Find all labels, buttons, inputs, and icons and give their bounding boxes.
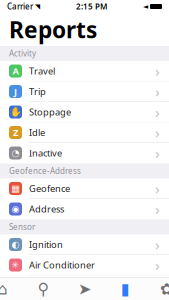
staticText: ✳ bbox=[11, 260, 19, 270]
staticText: › bbox=[155, 102, 160, 122]
button[interactable]: ✳ bbox=[0, 255, 169, 275]
button[interactable]: ◐ bbox=[0, 234, 169, 255]
button[interactable]: Places bbox=[27, 278, 60, 300]
staticText: Air Conditioner bbox=[29, 259, 95, 271]
staticText: Address bbox=[29, 203, 64, 215]
staticText: › bbox=[155, 143, 160, 163]
staticText: › bbox=[155, 235, 160, 254]
staticText: Ignition bbox=[29, 238, 63, 251]
staticText: Geofence bbox=[29, 182, 70, 195]
staticText: ◥ bbox=[35, 3, 40, 10]
staticText: Travel bbox=[29, 65, 55, 77]
staticText: › bbox=[155, 179, 160, 198]
staticText: J bbox=[14, 85, 17, 98]
button[interactable]: ✋ bbox=[0, 102, 169, 122]
button[interactable]: Home bbox=[0, 278, 19, 300]
staticText: A bbox=[12, 65, 18, 77]
staticText: ➤ bbox=[78, 280, 91, 298]
staticText: ▦ bbox=[11, 183, 20, 194]
staticText: Idle bbox=[29, 126, 45, 139]
staticText: Geofence-Address bbox=[9, 166, 81, 176]
staticText: Carrier bbox=[7, 1, 33, 12]
staticText: Stoppage bbox=[29, 106, 71, 118]
staticText: ⚲ bbox=[37, 280, 49, 298]
button[interactable]: J bbox=[0, 81, 169, 102]
button[interactable]: Reports bbox=[109, 278, 142, 300]
staticText: › bbox=[155, 199, 160, 219]
staticText: Analog Data bbox=[29, 279, 82, 292]
staticText: › bbox=[155, 255, 160, 275]
staticText: › bbox=[155, 276, 160, 295]
staticText: ✋ bbox=[9, 107, 21, 117]
button[interactable]: A bbox=[0, 61, 169, 81]
staticText: 2:15 PM bbox=[76, 1, 107, 12]
button[interactable]: Track bbox=[68, 278, 101, 300]
staticText: › bbox=[155, 123, 160, 142]
staticText: ◄ bbox=[143, 3, 148, 10]
staticText: Sensor bbox=[9, 222, 35, 232]
staticText: ▮ bbox=[121, 280, 130, 298]
staticText: ◔ bbox=[11, 148, 19, 158]
button[interactable]: Z bbox=[0, 122, 169, 143]
staticText: Inactive bbox=[29, 147, 62, 159]
staticText: Trip bbox=[29, 85, 46, 98]
button[interactable]: Settings bbox=[150, 278, 169, 300]
staticText: › bbox=[155, 82, 160, 101]
button[interactable]: ◔ bbox=[0, 143, 169, 163]
staticText: › bbox=[155, 61, 160, 81]
staticText: ✿ bbox=[160, 280, 169, 298]
button[interactable]: ◉ bbox=[0, 199, 169, 219]
staticText: ◉ bbox=[11, 204, 19, 214]
staticText: Reports bbox=[9, 14, 97, 44]
staticText: ◐ bbox=[11, 239, 19, 250]
staticText: Activity bbox=[9, 48, 36, 59]
staticText: ⌂ bbox=[0, 280, 7, 298]
button[interactable]: ▦ bbox=[0, 178, 169, 199]
button[interactable]: ▯ bbox=[0, 275, 169, 296]
staticText: Z bbox=[13, 126, 18, 139]
